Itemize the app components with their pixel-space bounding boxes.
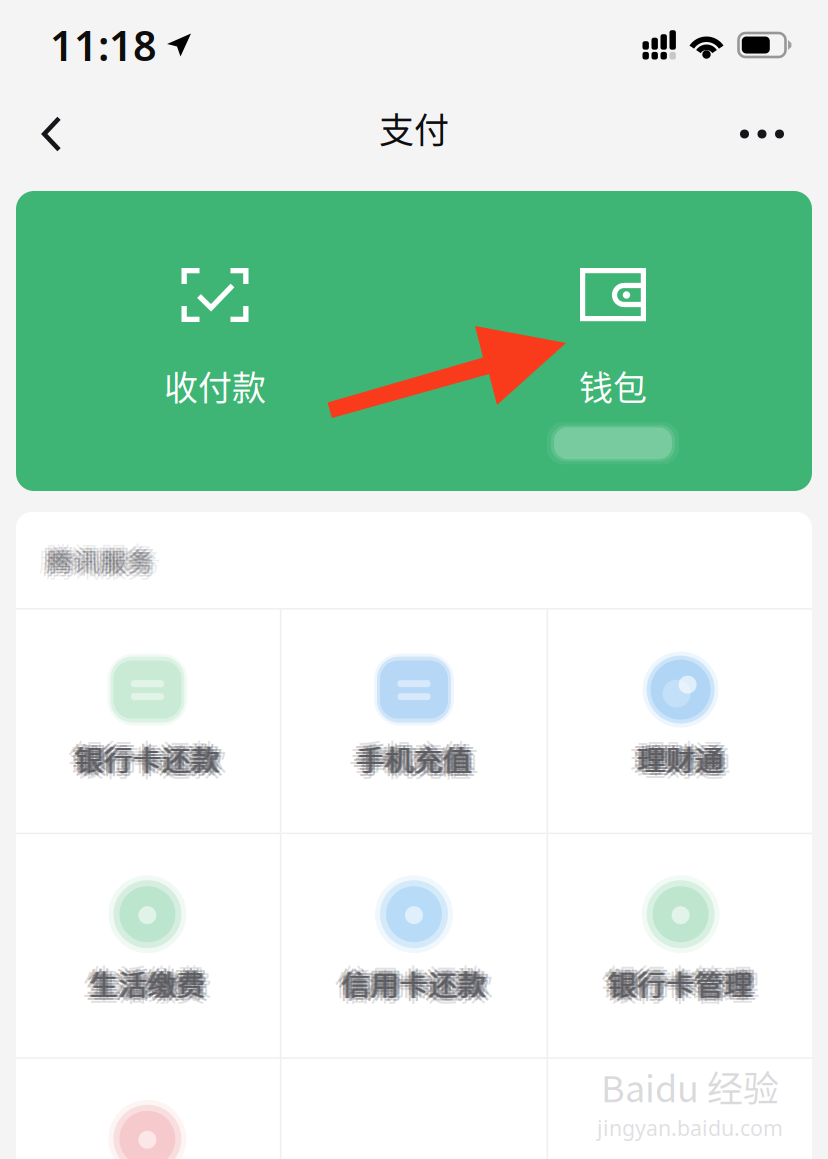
staticText: 手机充值 [349, 738, 465, 779]
staticText: 银行卡还款 [78, 741, 223, 782]
staticText: 理财通 [634, 735, 721, 776]
staticText: 银行卡还款 [68, 738, 213, 779]
staticText: 腾讯服务 [39, 541, 147, 579]
staticText: 生活缴费 [93, 965, 209, 1007]
staticText: 手机充值 [359, 741, 475, 782]
staticText: 理财通 [634, 741, 721, 782]
button[interactable]: 理财通 [548, 610, 813, 833]
staticText: 生活缴费 [89, 962, 205, 1004]
button[interactable]: Back [14, 96, 90, 172]
staticText: jingyan.baidu.com [597, 1114, 783, 1142]
staticText: 腾讯服务 [49, 543, 157, 582]
staticText: 生活缴费 [96, 962, 212, 1004]
staticText: 银行卡管理 [608, 962, 753, 1004]
staticText: 腾讯服务 [46, 541, 154, 579]
staticText: 信用卡还款 [341, 968, 486, 1010]
staticText: 信用卡还款 [334, 962, 479, 1004]
staticText: 银行卡还款 [75, 738, 220, 779]
staticText: 银行卡还款 [71, 735, 216, 776]
staticText: 腾讯服务 [43, 538, 151, 576]
staticText: 手机充值 [356, 732, 472, 773]
staticText: 银行卡管理 [607, 962, 752, 1004]
staticText: 银行卡还款 [74, 738, 219, 779]
staticText: 生活缴费 [88, 962, 204, 1004]
staticText: 11:18 [50, 18, 157, 72]
button[interactable]: 手机充值 [281, 610, 546, 833]
staticText: 银行卡还款 [75, 744, 220, 785]
staticText: 银行卡还款 [82, 738, 227, 779]
staticText: 理财通 [637, 738, 724, 779]
button[interactable]: 信用卡还款 [281, 834, 546, 1057]
staticText: 银行卡还款 [78, 735, 223, 776]
staticText: 理财通 [637, 732, 724, 773]
staticText: 手机充值 [357, 738, 473, 779]
staticText: 手机充值 [353, 735, 469, 776]
staticText: 腾讯服务 [43, 543, 151, 582]
staticText: 手机充值 [363, 738, 479, 779]
staticText: 生活缴费 [89, 968, 205, 1010]
button[interactable] [548, 1059, 813, 1159]
staticText: 银行卡管理 [608, 956, 753, 998]
staticText: 腾讯服务 [49, 538, 157, 576]
button[interactable]: 生活缴费 [15, 834, 280, 1057]
staticText: 银行卡管理 [611, 965, 756, 1007]
staticText: 银行卡还款 [76, 738, 221, 779]
staticText: 信用卡还款 [341, 956, 486, 998]
staticText: 手机充值 [356, 744, 472, 785]
staticText: 银行卡还款 [75, 732, 220, 773]
staticText: 收付款 [164, 361, 266, 410]
staticText: 银行卡还款 [71, 741, 216, 782]
button[interactable]: More [724, 96, 800, 172]
staticText: 理财通 [636, 738, 723, 779]
staticText: 信用卡还款 [340, 962, 485, 1004]
staticText: 理财通 [640, 735, 727, 776]
staticText: 生活缴费 [89, 956, 205, 998]
staticText: 生活缴费 [86, 959, 202, 1001]
staticText: 银行卡管理 [611, 959, 756, 1001]
staticText: 信用卡还款 [345, 965, 490, 1007]
staticText: 手机充值 [353, 741, 469, 782]
staticText: 支付 [379, 103, 449, 153]
button[interactable]: 收付款 [16, 191, 414, 491]
button[interactable]: 银行卡还款 [15, 610, 280, 833]
button[interactable]: 城市服务 [15, 1059, 280, 1159]
staticText: Baidu 经验 [601, 1060, 779, 1113]
staticText: 银行卡管理 [605, 965, 750, 1007]
staticText: 理财通 [644, 738, 731, 779]
staticText: 银行卡管理 [605, 959, 750, 1001]
staticText: 信用卡还款 [338, 965, 483, 1007]
staticText: 银行卡管理 [601, 962, 746, 1004]
staticText: 信用卡还款 [343, 962, 488, 1004]
staticText: 信用卡还款 [348, 962, 493, 1004]
staticText: 生活缴费 [91, 962, 207, 1004]
staticText: 理财通 [637, 744, 724, 785]
button[interactable]: 银行卡管理 [548, 834, 813, 1057]
staticText: 理财通 [640, 741, 727, 782]
staticText: 手机充值 [359, 735, 475, 776]
staticText: 理财通 [638, 738, 725, 779]
staticText: 信用卡还款 [345, 959, 490, 1001]
staticText: 理财通 [630, 738, 717, 779]
staticText: 生活缴费 [93, 959, 209, 1001]
staticText: 生活缴费 [86, 965, 202, 1007]
staticText: 腾讯服务 [46, 535, 154, 573]
staticText: 银行卡管理 [609, 962, 754, 1004]
staticText: 银行卡管理 [608, 968, 753, 1010]
staticText: 腾讯服务 [46, 547, 154, 585]
button[interactable]: 钱包 [414, 191, 812, 491]
staticText: 银行卡管理 [615, 962, 760, 1004]
staticText: 钱包 [579, 361, 647, 410]
staticText: 信用卡还款 [338, 959, 483, 1001]
staticText: 腾讯服务 [53, 541, 161, 579]
staticText: 手机充值 [356, 738, 472, 779]
staticText: 生活缴费 [82, 962, 198, 1004]
staticText: 信用卡还款 [341, 962, 486, 1004]
staticText: 手机充值 [355, 738, 471, 779]
